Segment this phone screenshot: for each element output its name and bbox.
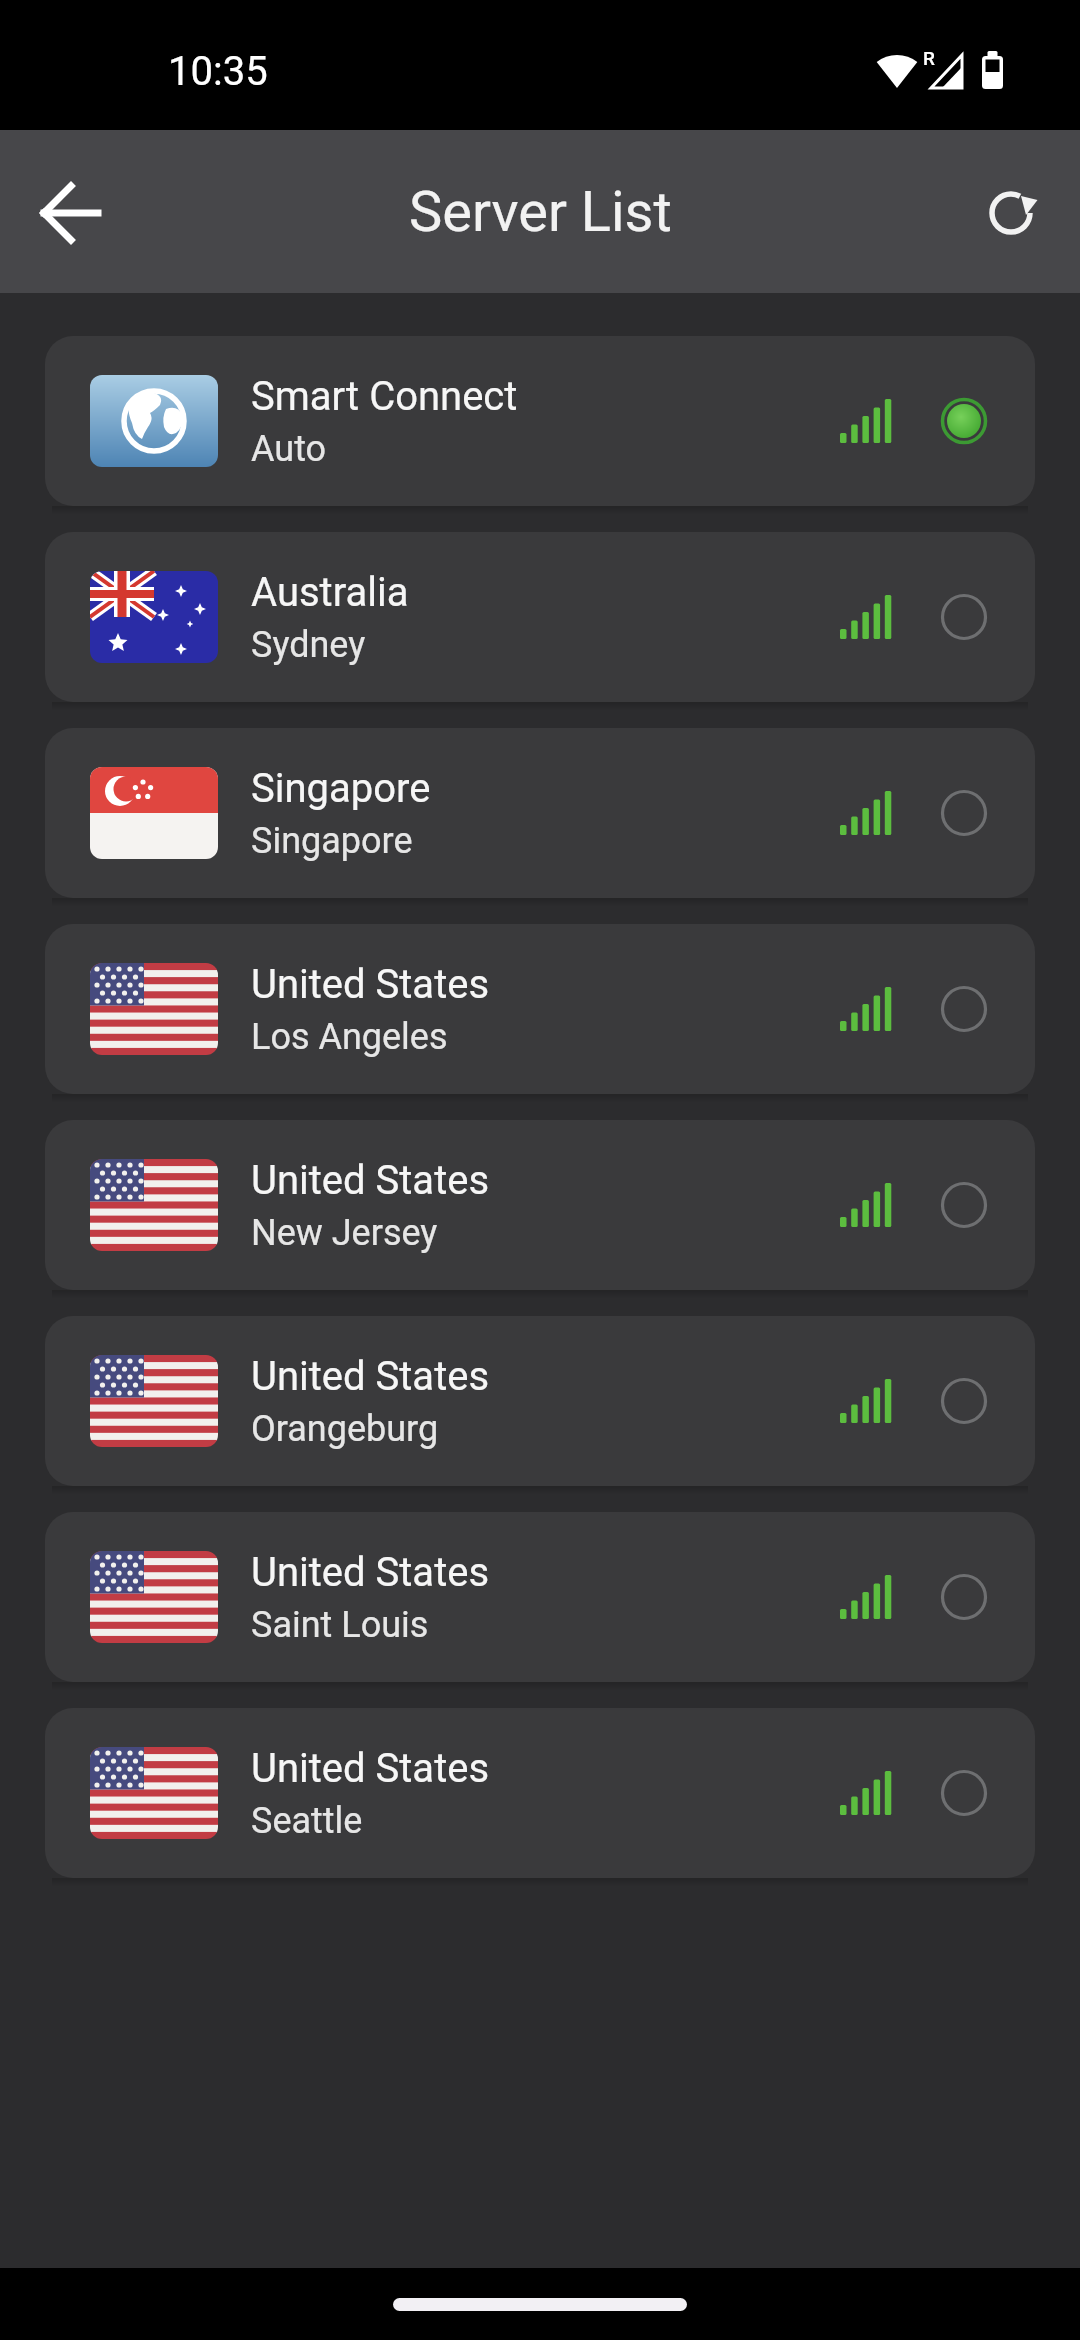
staticText: R xyxy=(923,47,935,69)
staticText: United States xyxy=(251,1549,490,1596)
staticText: Auto xyxy=(251,428,327,470)
staticText: New Jersey xyxy=(251,1212,438,1254)
staticText: Smart Connect xyxy=(251,373,518,420)
staticText: Singapore xyxy=(251,820,413,862)
staticText: Australia xyxy=(251,569,409,616)
staticText: Orangeburg xyxy=(251,1408,439,1450)
staticText: United States xyxy=(251,1353,490,1400)
staticText: Server List xyxy=(409,179,672,245)
staticText: Saint Louis xyxy=(251,1604,429,1646)
staticText: United States xyxy=(251,1157,490,1204)
staticText: Seattle xyxy=(251,1800,363,1842)
staticText: Singapore xyxy=(251,765,431,812)
staticText: Sydney xyxy=(251,624,366,666)
staticText: 10:35 xyxy=(168,48,268,95)
staticText: United States xyxy=(251,961,490,1008)
staticText: Los Angeles xyxy=(251,1016,448,1058)
staticText: United States xyxy=(251,1745,490,1792)
